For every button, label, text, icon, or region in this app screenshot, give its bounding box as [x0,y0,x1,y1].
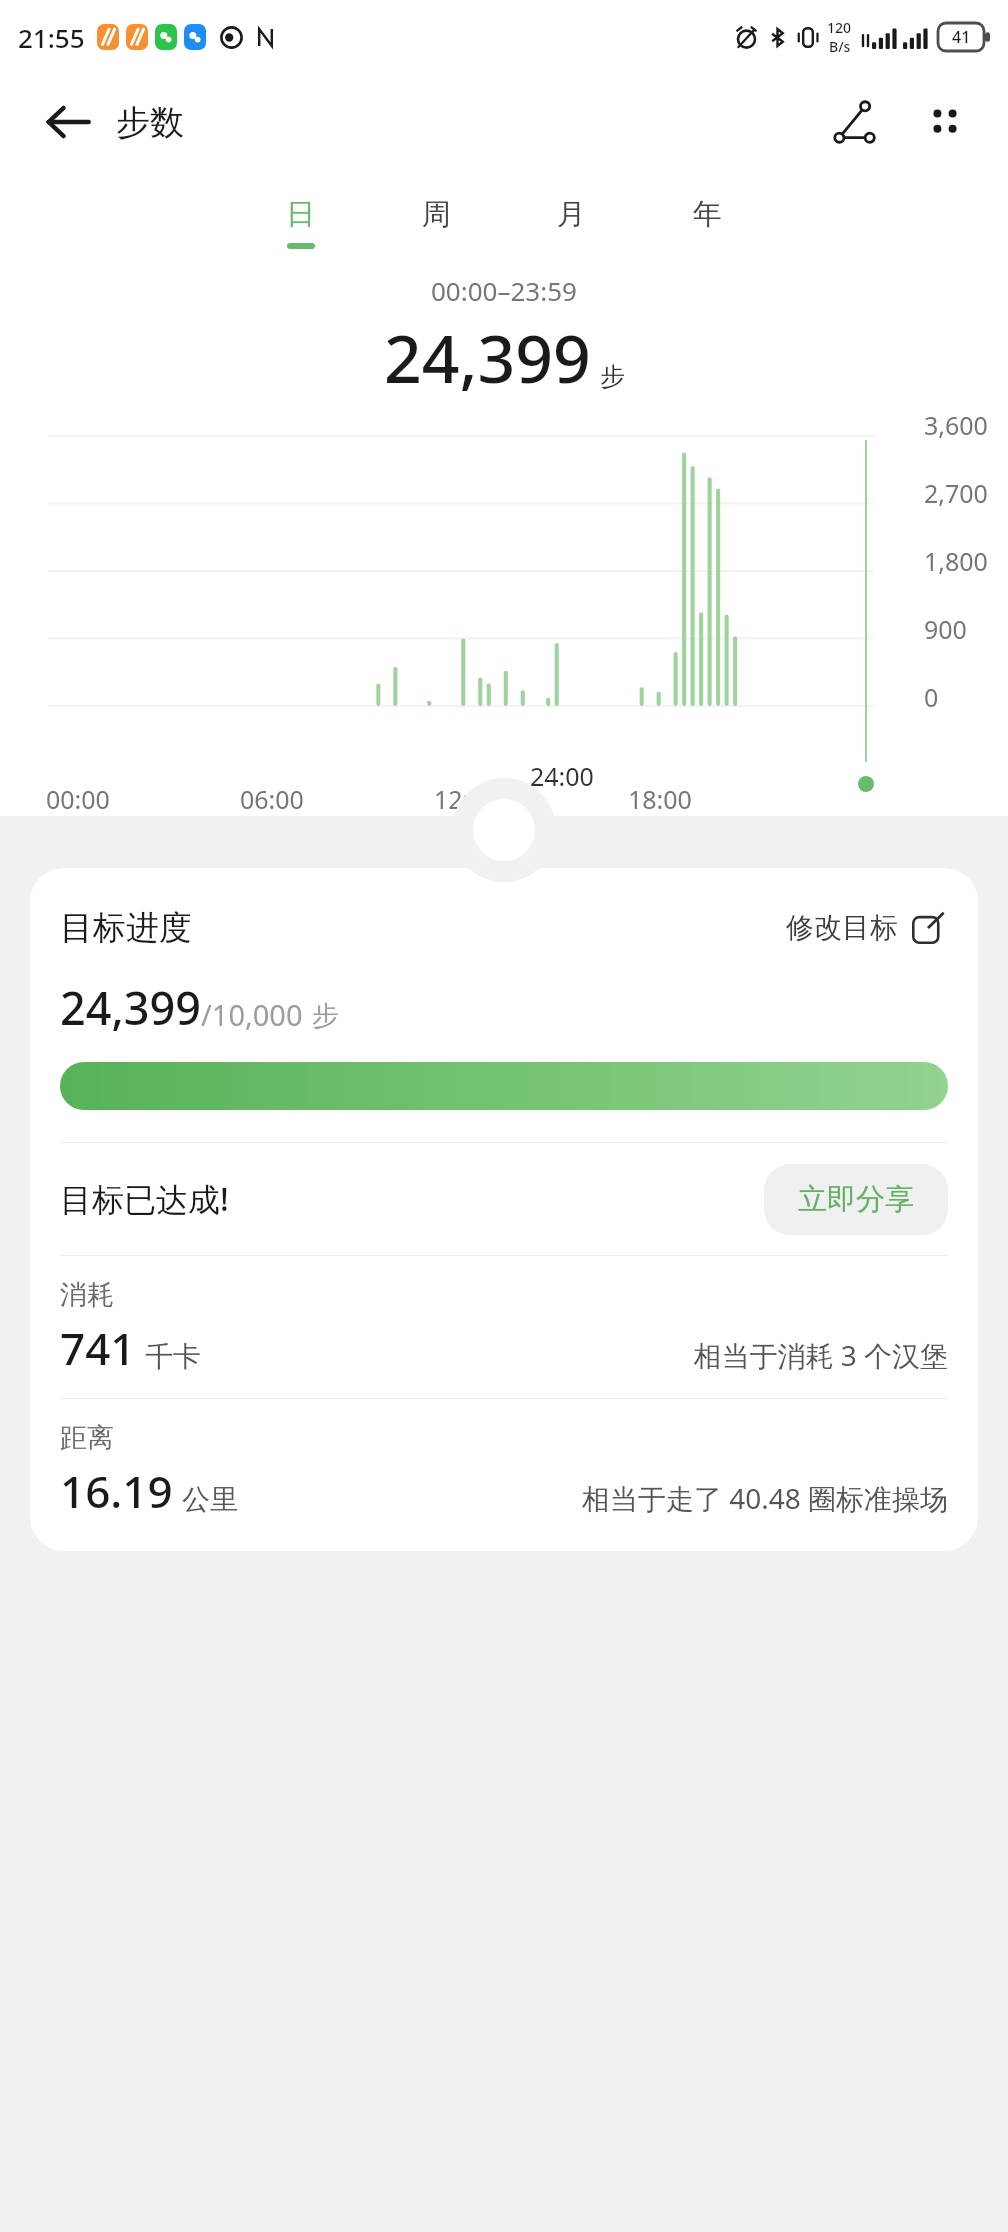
staticText: 24:00 [530,759,594,793]
staticText: 120 [827,18,852,37]
staticText: 24,399 [60,977,201,1038]
staticText: 千卡 [145,1339,201,1374]
staticText: 18:00 [628,782,692,816]
staticText: 目标已达成! [60,1177,229,1221]
staticText: 公里 [182,1482,238,1517]
staticText: 月 [557,196,586,233]
button[interactable]: Back [36,90,100,154]
staticText: 00:00 [46,782,110,816]
staticText: 12:00 [434,782,498,816]
staticText: 消耗 [60,1278,114,1312]
staticText: 步数 [116,101,184,144]
staticText: 21:55 [18,20,85,55]
staticText: 41 [952,26,971,48]
button[interactable]: Expand details [473,799,535,861]
staticText: 3,600 [924,408,988,442]
staticText: 24,399 [384,312,591,402]
staticText: 立即分享 [798,1181,914,1218]
staticText: 741 [60,1318,136,1378]
button[interactable]: More options [912,89,978,155]
staticText: 2,700 [924,476,988,510]
button[interactable]: 年 [687,194,728,251]
button[interactable]: 修改目标 [782,902,948,953]
button[interactable]: 日 [280,194,321,251]
button[interactable]: 月 [551,194,592,251]
staticText: 步 [312,999,339,1033]
staticText: 周 [422,196,451,233]
staticText: 16.19 [60,1461,173,1521]
staticText: 06:00 [240,782,304,816]
button[interactable]: 立即分享 [764,1164,948,1235]
button[interactable]: Share [822,89,888,155]
button[interactable]: 周 [416,194,457,251]
staticText: B/s [829,37,851,56]
staticText: 0 [924,680,939,714]
staticText: 目标进度 [60,907,192,949]
staticText: 900 [924,612,967,646]
staticText: 00:00–23:59 [431,273,577,308]
staticText: 修改目标 [786,910,898,945]
staticText: 距离 [60,1421,114,1455]
staticText: 1,800 [924,544,988,578]
staticText: 相当于走了 40.48 圈标准操场 [581,1479,948,1517]
staticText: 日 [286,196,315,233]
staticText: /10,000 [201,995,303,1034]
staticText: 年 [693,196,722,233]
staticText: 步 [600,361,625,392]
staticText: 相当于消耗 3 个汉堡 [693,1336,948,1374]
